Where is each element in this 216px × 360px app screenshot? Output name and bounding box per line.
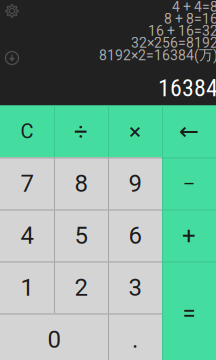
button[interactable]: 4 [0,209,54,261]
button[interactable]: History [1,47,23,69]
staticText: 8192×2=16384(万) [99,46,216,64]
staticText: – [183,173,195,194]
staticText: ← [179,117,199,145]
staticText: 1 [20,273,33,301]
button[interactable]: 1 [0,261,54,313]
button[interactable]: × [108,105,162,157]
button[interactable]: = [162,261,216,360]
button[interactable]: – [162,157,216,209]
staticText: 4 + 4=8 [172,0,216,15]
staticText: = [182,299,195,327]
button[interactable]: + [162,209,216,261]
button[interactable]: 5 [54,209,108,261]
staticText: 32×256=8192 [131,35,216,51]
button[interactable]: 7 [0,157,54,209]
staticText: 16384 [158,74,216,102]
button[interactable]: 2 [54,261,108,313]
button[interactable]: 9 [108,157,162,209]
staticText: 8 + 8=16 [164,11,216,27]
staticText: ÷ [74,117,88,145]
button[interactable]: ÷ [54,105,108,157]
staticText: × [129,118,141,145]
staticText: 16 + 16=32 [148,23,216,39]
button[interactable]: ← [162,105,216,157]
button[interactable]: C [0,105,54,157]
staticText: + [182,221,196,249]
button[interactable]: 6 [108,209,162,261]
staticText: C [20,120,33,143]
staticText: 7 [20,169,33,197]
staticText: 2 [74,273,87,301]
staticText: 3 [128,273,141,301]
button[interactable]: . [108,313,162,360]
staticText: 5 [74,221,87,249]
button[interactable]: 0 [0,313,108,360]
button[interactable]: 3 [108,261,162,313]
staticText: 4 [20,221,33,249]
staticText: 6 [128,221,141,249]
staticText: 8 [74,169,87,197]
staticText: 0 [47,325,60,353]
staticText: . [132,325,138,353]
staticText: 9 [128,169,141,197]
button[interactable]: 8 [54,157,108,209]
button[interactable]: Settings [1,0,23,22]
